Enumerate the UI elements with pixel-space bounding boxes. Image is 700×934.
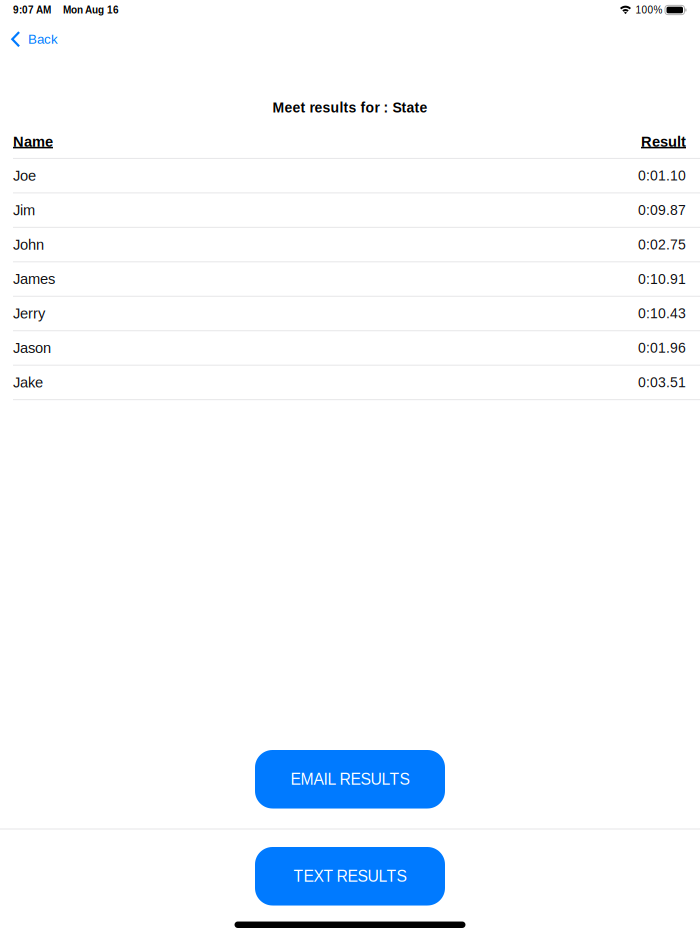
staticText: Jim (13, 202, 35, 218)
staticText: 0:10.91 (638, 271, 686, 287)
staticText: Name (13, 133, 53, 150)
staticText: 0:03.51 (638, 375, 686, 390)
staticText: James (13, 271, 55, 287)
staticText: Jason (13, 340, 51, 356)
button[interactable]: TEXT RESULTS (255, 847, 445, 905)
staticText: TEXT RESULTS (293, 867, 406, 885)
staticText: 0:09.87 (638, 202, 686, 218)
staticText: Mon Aug 16 (63, 4, 119, 16)
staticText: Joe (13, 167, 36, 184)
staticText: 0:01.10 (638, 168, 686, 183)
staticText: EMAIL RESULTS (290, 770, 409, 788)
button[interactable]: EMAIL RESULTS (255, 750, 445, 808)
staticText: John (13, 236, 44, 253)
staticText: Jake (13, 374, 43, 391)
staticText: Meet results for : State (272, 100, 427, 115)
staticText: 0:01.96 (638, 340, 686, 356)
staticText: Back (28, 32, 58, 47)
staticText: 100% (635, 4, 662, 16)
staticText: Result (641, 133, 686, 150)
staticText: 9:07 AM (13, 4, 51, 16)
staticText: Jerry (13, 305, 45, 322)
staticText: 0:02.75 (638, 237, 686, 252)
button[interactable]: Back (0, 20, 68, 52)
staticText: 0:10.43 (638, 306, 686, 321)
